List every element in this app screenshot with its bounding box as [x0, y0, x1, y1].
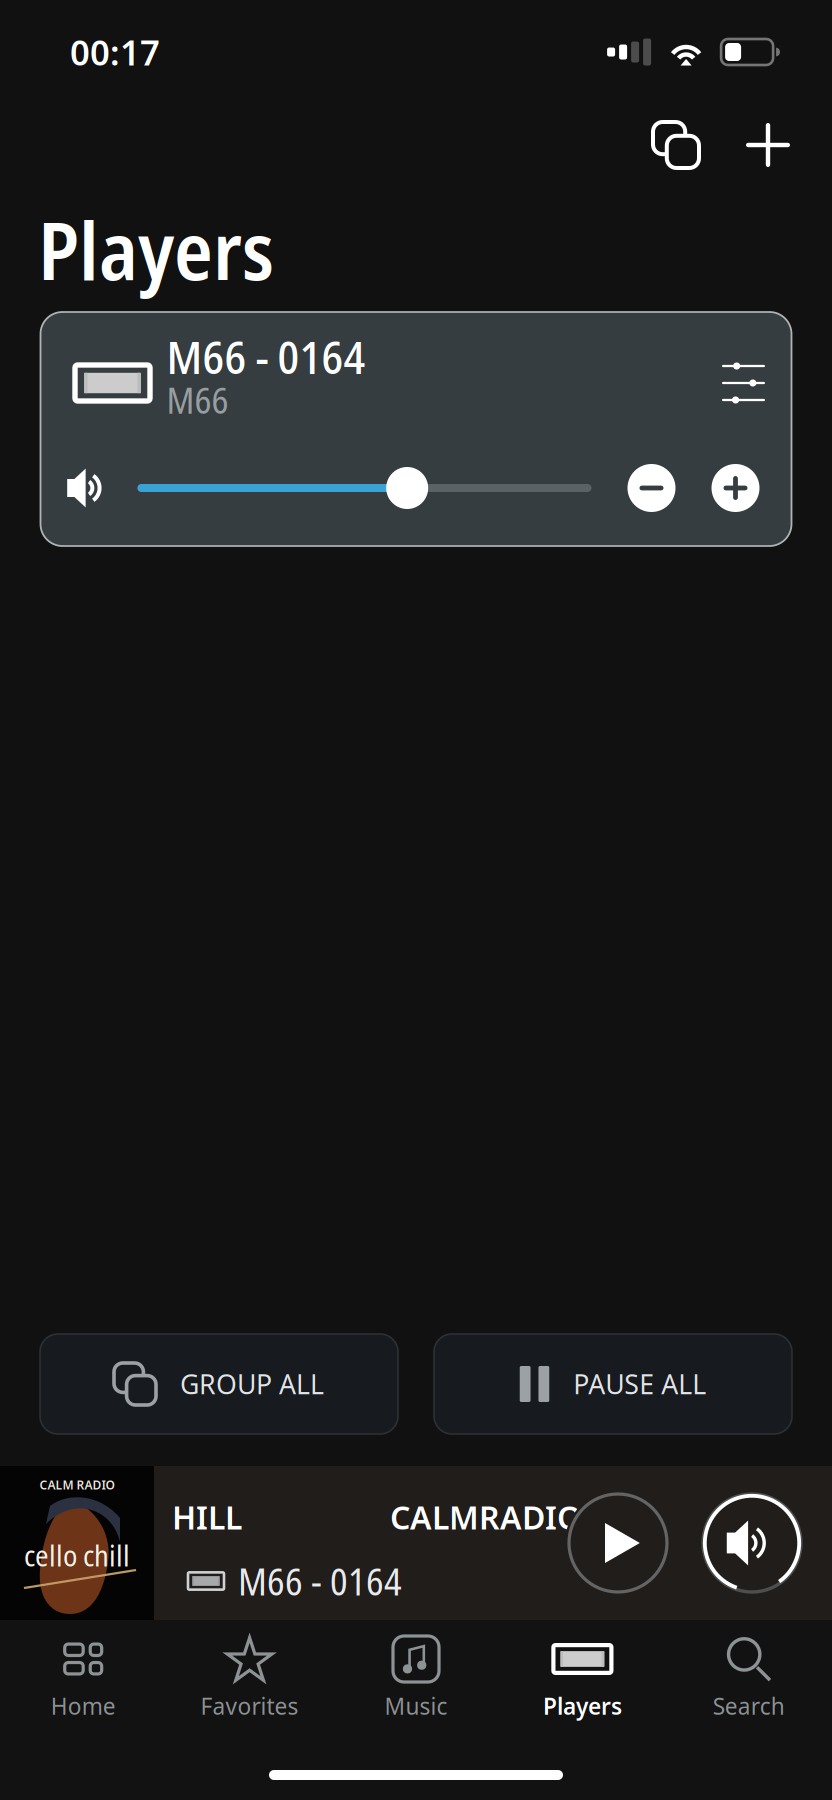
button[interactable]: Music: [333, 1620, 499, 1721]
button[interactable]: PAUSE ALL: [434, 1334, 792, 1434]
button[interactable]: Play: [560, 1466, 676, 1620]
staticText: 00:17: [70, 29, 160, 75]
staticText: HILL: [172, 1496, 242, 1538]
staticText: Home: [51, 1691, 116, 1721]
staticText: CALM RADIO: [39, 1477, 114, 1493]
button[interactable]: Volume up: [693, 430, 777, 546]
staticText: Players: [38, 194, 274, 303]
button[interactable]: Volume: [694, 1466, 810, 1620]
button[interactable]: Favorites: [166, 1620, 333, 1721]
button[interactable]: Volume down: [609, 430, 693, 546]
staticText: Players: [543, 1691, 622, 1721]
staticText: M66: [166, 375, 228, 424]
staticText: Music: [384, 1691, 447, 1721]
staticText: GROUP ALL: [180, 1366, 324, 1402]
staticText: Search: [713, 1691, 785, 1721]
button[interactable]: Add player: [722, 104, 814, 186]
staticText: M66 - 0164: [166, 326, 365, 387]
button[interactable]: Search: [666, 1620, 832, 1721]
staticText: CALMRADIO: [390, 1496, 582, 1538]
staticText: PAUSE ALL: [573, 1366, 706, 1402]
button[interactable]: Home: [0, 1620, 166, 1721]
button[interactable]: Player settings: [695, 312, 791, 430]
button[interactable]: Players: [499, 1620, 666, 1721]
button[interactable]: GROUP ALL: [40, 1334, 398, 1434]
staticText: cello chill: [24, 1535, 130, 1575]
button[interactable]: Group players: [630, 104, 722, 186]
staticText: Favorites: [201, 1691, 299, 1721]
staticText: M66 - 0164: [238, 1556, 402, 1606]
